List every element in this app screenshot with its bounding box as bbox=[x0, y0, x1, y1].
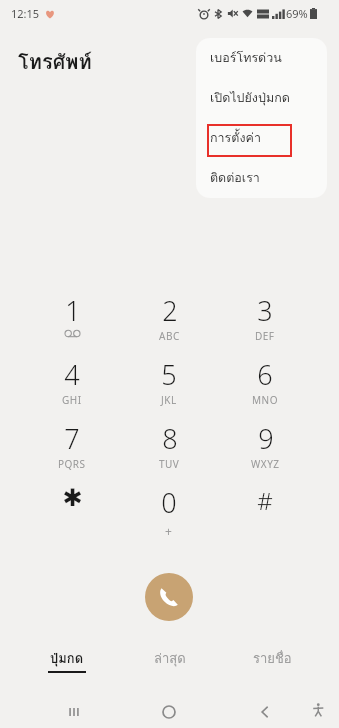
button[interactable]: Recents bbox=[54, 692, 94, 728]
button[interactable]: Call bbox=[145, 573, 193, 621]
staticText: 8 bbox=[162, 420, 178, 457]
staticText: ✱ bbox=[62, 484, 83, 512]
staticText: ล่าสุด bbox=[154, 648, 186, 669]
staticText: WXYZ bbox=[251, 457, 280, 471]
staticText: รายชื่อ bbox=[253, 648, 292, 669]
button[interactable]: 3 bbox=[221, 292, 309, 348]
button[interactable]: 2 bbox=[125, 292, 213, 348]
staticText: 0 bbox=[161, 484, 177, 521]
button[interactable]: ปุ่มกด bbox=[17, 648, 117, 684]
button[interactable]: 0 bbox=[125, 484, 213, 540]
staticText: 9 bbox=[258, 420, 274, 457]
button[interactable]: Back bbox=[245, 692, 285, 728]
staticText: PQRS bbox=[58, 457, 86, 471]
staticText: ปุ่มกด bbox=[50, 648, 84, 669]
staticText: TUV bbox=[159, 457, 180, 471]
button[interactable]: 5 bbox=[125, 356, 213, 412]
staticText: JKL bbox=[161, 393, 177, 407]
staticText: 3 bbox=[257, 292, 273, 329]
staticText: 4 bbox=[64, 356, 80, 393]
button[interactable]: 9 bbox=[221, 420, 309, 476]
button[interactable]: เบอร์โทรด่วน bbox=[196, 38, 327, 78]
staticText: + bbox=[165, 523, 173, 539]
staticText: GHI bbox=[62, 393, 82, 407]
button[interactable]: 1 bbox=[28, 292, 116, 348]
button[interactable]: 8 bbox=[125, 420, 213, 476]
button[interactable]: เปิดไปยังปุ่มกด bbox=[196, 78, 327, 118]
button[interactable]: 4 bbox=[28, 356, 116, 412]
button[interactable]: 7 bbox=[28, 420, 116, 476]
staticText: 7 bbox=[64, 420, 80, 457]
button[interactable]: # bbox=[221, 484, 309, 540]
staticText: 1 bbox=[65, 292, 81, 329]
button[interactable]: ติดต่อเรา bbox=[196, 158, 327, 198]
staticText: 6 bbox=[257, 356, 273, 393]
staticText: เบอร์โทรด่วน bbox=[210, 48, 282, 68]
button[interactable]: Accessibility bbox=[300, 692, 336, 728]
staticText: 5 bbox=[161, 356, 177, 393]
staticText: DEF bbox=[255, 329, 275, 343]
staticText: ติดต่อเรา bbox=[210, 168, 260, 188]
staticText: โทรศัพท์ bbox=[18, 46, 92, 78]
button[interactable]: Home bbox=[149, 692, 189, 728]
button[interactable]: รายชื่อ bbox=[222, 648, 322, 684]
button[interactable]: ✱ bbox=[28, 484, 116, 540]
button[interactable]: 6 bbox=[221, 356, 309, 412]
button[interactable]: ล่าสุด bbox=[120, 648, 220, 684]
staticText: ABC bbox=[159, 329, 180, 343]
staticText: 69% bbox=[286, 6, 308, 21]
staticText: 12:15 bbox=[11, 6, 40, 21]
staticText: เปิดไปยังปุ่มกด bbox=[210, 88, 290, 108]
staticText: 2 bbox=[162, 292, 178, 329]
button[interactable]: การตั้งค่า bbox=[196, 118, 327, 158]
staticText: # bbox=[257, 484, 273, 517]
staticText: MNO bbox=[252, 393, 278, 407]
staticText: การตั้งค่า bbox=[210, 128, 261, 148]
